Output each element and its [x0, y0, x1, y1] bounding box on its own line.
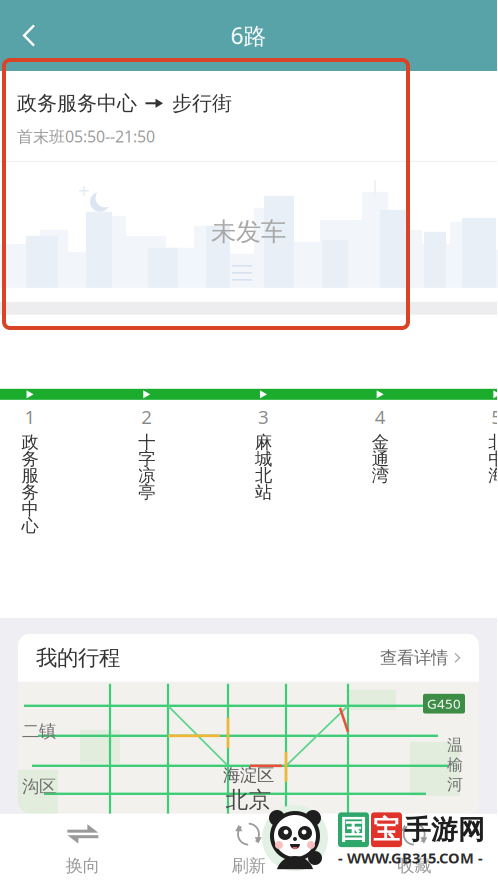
staticText: 河 — [447, 775, 463, 794]
button[interactable]: 收藏 — [331, 814, 497, 884]
staticText: 心 — [22, 515, 39, 536]
staticText: 城 — [255, 448, 272, 469]
staticText: 5 — [491, 404, 498, 429]
staticText: 十 — [138, 431, 155, 453]
staticText: 查看详情 — [380, 647, 448, 668]
staticText: 麻 — [255, 431, 272, 453]
staticText: 3 — [258, 404, 269, 429]
staticText: 海 — [488, 465, 498, 486]
staticText: 6路 — [230, 20, 266, 50]
staticText: 我的行程 — [36, 645, 120, 671]
staticText: 收藏 — [397, 855, 431, 876]
staticText: 换向 — [66, 855, 100, 876]
staticText: 政务服务中心 — [17, 91, 137, 116]
staticText: 未发车 — [211, 216, 286, 247]
staticText: 站 — [255, 482, 272, 503]
button[interactable]: 5 — [438, 400, 498, 534]
staticText: 湾 — [372, 465, 389, 486]
staticText: 务 — [22, 448, 39, 469]
staticText: 步行街 — [172, 91, 232, 116]
staticText: 北 — [255, 465, 272, 486]
staticText: 北 — [488, 431, 498, 453]
staticText: 首末班05:50--21:50 — [17, 126, 155, 147]
button[interactable]: Back — [0, 4, 58, 66]
staticText: 1 — [25, 404, 36, 429]
staticText: 中 — [488, 448, 498, 469]
button[interactable]: 3 — [205, 400, 322, 534]
staticText: 通 — [372, 448, 389, 469]
staticText: 二镇 — [22, 720, 56, 742]
staticText: 手游网 — [404, 813, 485, 846]
staticText: 国 — [340, 813, 367, 846]
staticText: 北京 — [225, 786, 271, 814]
staticText: 务 — [22, 482, 39, 503]
staticText: 宝 — [373, 813, 400, 846]
staticText: 温 — [447, 735, 463, 755]
button[interactable]: 刷新 — [166, 814, 331, 884]
button[interactable]: 4 — [322, 400, 438, 534]
staticText: 沟区 — [22, 776, 56, 797]
staticText: 榆 — [447, 755, 463, 775]
staticText: 中 — [22, 498, 39, 520]
staticText: 服 — [22, 465, 39, 486]
staticText: 刷新 — [231, 855, 265, 876]
staticText: 海淀区 — [223, 765, 274, 786]
button[interactable]: 我的行程 — [18, 634, 479, 682]
staticText: 4 — [375, 404, 386, 429]
button[interactable]: 换向 — [0, 814, 166, 884]
staticText: 亭 — [138, 482, 155, 503]
button[interactable]: 2 — [88, 400, 205, 534]
staticText: 金 — [372, 431, 389, 453]
staticText: - WWW.GB315.COM - — [338, 848, 483, 868]
staticText: 政 — [22, 431, 39, 453]
staticText: 凉 — [138, 465, 155, 486]
button[interactable]: 1 — [0, 400, 88, 534]
staticText: 字 — [138, 448, 155, 469]
staticText: G450 — [427, 695, 461, 712]
staticText: 2 — [141, 404, 152, 429]
